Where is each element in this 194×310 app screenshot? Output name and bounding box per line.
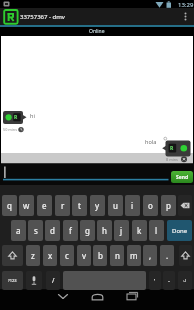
staticText: 13:29 [178,1,194,9]
staticText: 50 mins [3,127,18,132]
button[interactable] [2,245,23,266]
button[interactable]: t [72,195,87,216]
staticText: g [85,225,90,236]
staticText: j [120,225,123,236]
button[interactable]: p [161,195,176,216]
staticText: . [166,250,169,261]
staticText: :-) [183,278,187,283]
button[interactable]: i [125,195,140,216]
button[interactable]: o [143,195,158,216]
staticText: Done [172,227,188,235]
button[interactable]: 33757367 - dmv [20,8,170,25]
button[interactable]: v [77,245,91,266]
staticText: k [137,225,142,236]
button[interactable]: Send [171,171,193,183]
button[interactable]: ’ [149,271,161,290]
button[interactable]: . [160,245,174,266]
staticText: q [7,200,12,211]
button[interactable]: k [132,220,147,241]
button[interactable] [178,8,194,25]
button[interactable]: - [163,271,175,290]
button[interactable]: h [97,220,112,241]
button[interactable]: y [90,195,105,216]
button[interactable]: c [60,245,74,266]
staticText: 33757367 - dmv [20,13,65,21]
button[interactable]: , [143,245,157,266]
staticText: , [149,250,152,261]
button[interactable]: u [108,195,123,216]
button[interactable]: j [114,220,129,241]
button[interactable]: / [46,271,60,290]
button[interactable]: x [43,245,57,266]
button[interactable]: Done [167,220,192,241]
staticText: y [95,200,100,211]
staticText: Online [89,28,105,35]
staticText: l [155,225,158,236]
button[interactable]: e [37,195,52,216]
staticText: x [48,250,53,261]
staticText: d [50,225,55,236]
staticText: e [42,200,47,211]
staticText: m [130,250,138,261]
staticText: p [166,200,171,211]
button[interactable]: a [11,220,26,241]
staticText: r [61,200,65,211]
button[interactable]: w [19,195,34,216]
staticText: hi [30,112,35,119]
staticText: o [148,200,153,211]
button[interactable] [2,164,168,184]
button[interactable]: ?123 [2,271,23,290]
button[interactable] [50,290,76,310]
button[interactable]: r [55,195,70,216]
staticText: n [115,250,120,261]
staticText: f [69,225,72,236]
staticText: i [131,200,134,211]
staticText: z [31,250,35,261]
button[interactable]: q [2,195,17,216]
staticText: u [113,200,118,211]
staticText: 8 mins [166,157,178,162]
button[interactable] [118,290,144,310]
button[interactable] [26,271,42,290]
button[interactable]: m [127,245,141,266]
button[interactable]: n [110,245,124,266]
button[interactable]: f [63,220,78,241]
staticText: ?123 [8,278,17,283]
button[interactable] [179,245,192,266]
staticText: w [23,200,30,211]
staticText: ’ [154,277,156,285]
button[interactable]: b [93,245,107,266]
staticText: a [16,225,21,236]
button[interactable] [84,290,110,310]
button[interactable]: l [149,220,164,241]
button[interactable]: s [28,220,43,241]
staticText: b [98,250,103,261]
staticText: R [170,145,174,152]
button[interactable]: z [26,245,40,266]
staticText: - [168,277,170,285]
staticText: hola [145,138,157,145]
staticText: v [82,250,87,261]
button[interactable]: g [80,220,95,241]
button[interactable]: d [45,220,60,241]
staticText: Send [176,174,189,181]
staticText: c [65,250,69,261]
button[interactable]: :-) [178,271,192,290]
staticText: / [52,276,55,285]
staticText: t [78,200,81,211]
staticText: R [14,114,18,121]
button[interactable] [178,195,192,216]
staticText: h [102,225,107,236]
staticText: s [34,225,38,236]
